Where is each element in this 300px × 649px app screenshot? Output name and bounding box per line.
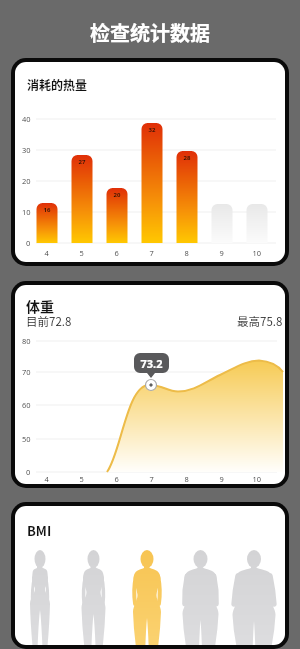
staticText: 检查统计数据 — [90, 18, 210, 47]
staticText: 消耗的热量 — [27, 76, 88, 93]
button[interactable]: 体重 — [15, 285, 285, 484]
staticText: 最高75.8 — [237, 313, 283, 330]
button[interactable]: 消耗的热量 — [15, 62, 285, 262]
button[interactable]: BMI — [15, 506, 285, 645]
staticText: 体重 — [26, 296, 54, 316]
staticText: BMI — [27, 521, 52, 540]
staticText: 目前72.8 — [26, 313, 72, 330]
